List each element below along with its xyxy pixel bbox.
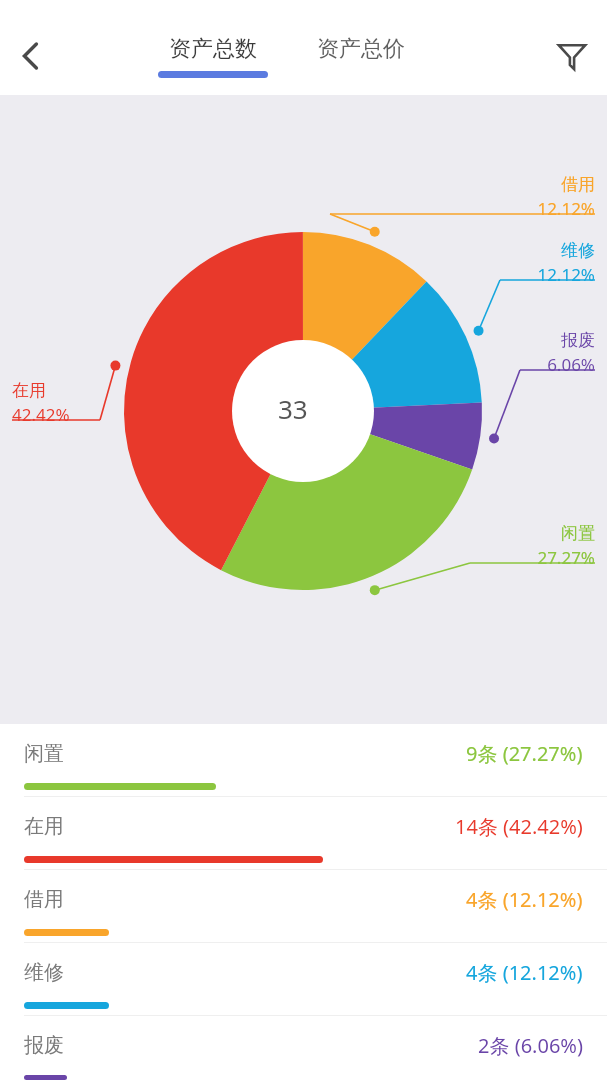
staticText: 2条 (6.06%) — [478, 1032, 583, 1059]
staticText: 报废 — [561, 330, 595, 351]
button[interactable]: 闲置 — [0, 724, 607, 797]
staticText: 42.42% — [12, 403, 70, 426]
staticText: 借用 — [24, 887, 64, 912]
staticText: 闲置 — [561, 523, 595, 544]
button[interactable]: Filter — [545, 29, 599, 83]
staticText: 维修 — [24, 960, 64, 985]
staticText: 33 — [278, 391, 308, 426]
button[interactable]: 报废 — [0, 1016, 607, 1080]
staticText: 9条 (27.27%) — [466, 740, 583, 767]
staticText: 报废 — [24, 1033, 64, 1058]
button[interactable]: 资产总数 — [152, 35, 274, 78]
staticText: 维修 — [561, 240, 595, 261]
staticText: 4条 (12.12%) — [466, 886, 583, 913]
staticText: 27.27% — [537, 546, 595, 569]
button[interactable]: 在用 — [0, 797, 607, 870]
staticText: 闲置 — [24, 741, 64, 766]
staticText: 资产总数 — [169, 35, 257, 63]
staticText: 在用 — [12, 380, 46, 401]
staticText: 12.12% — [537, 197, 595, 220]
button[interactable]: 资产总价 — [300, 35, 422, 78]
staticText: 资产总价 — [317, 35, 405, 63]
staticText: 4条 (12.12%) — [466, 959, 583, 986]
staticText: 在用 — [24, 814, 64, 839]
button[interactable]: 维修 — [0, 943, 607, 1016]
staticText: 14条 (42.42%) — [455, 813, 583, 840]
staticText: 借用 — [561, 174, 595, 195]
button[interactable]: Back — [4, 29, 58, 83]
staticText: 6.06% — [547, 353, 595, 376]
button[interactable]: 借用 — [0, 870, 607, 943]
staticText: 12.12% — [537, 263, 595, 286]
